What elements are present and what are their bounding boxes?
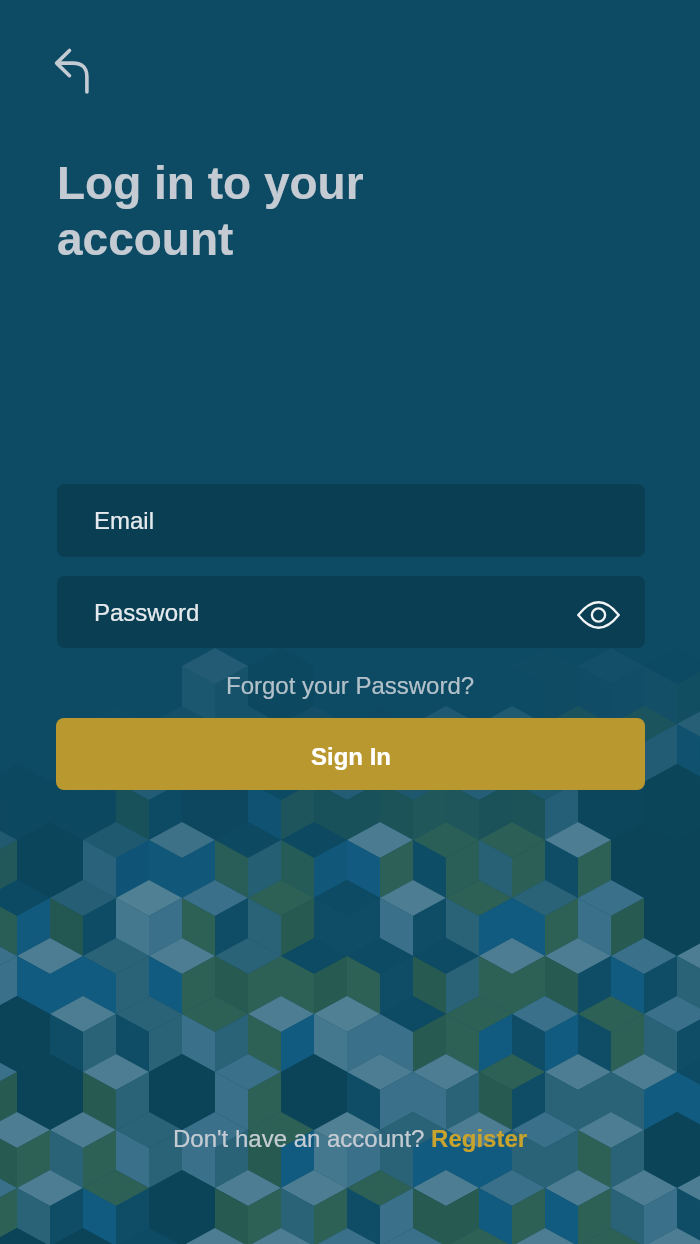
staticText: Don't have an account? Register: [173, 1125, 528, 1152]
staticText: Sign In: [311, 743, 391, 770]
staticText: Email: [94, 507, 155, 534]
staticText: Forgot your Password?: [226, 672, 475, 699]
staticText: Log in to your account: [57, 157, 364, 265]
staticText: Password: [94, 599, 200, 626]
